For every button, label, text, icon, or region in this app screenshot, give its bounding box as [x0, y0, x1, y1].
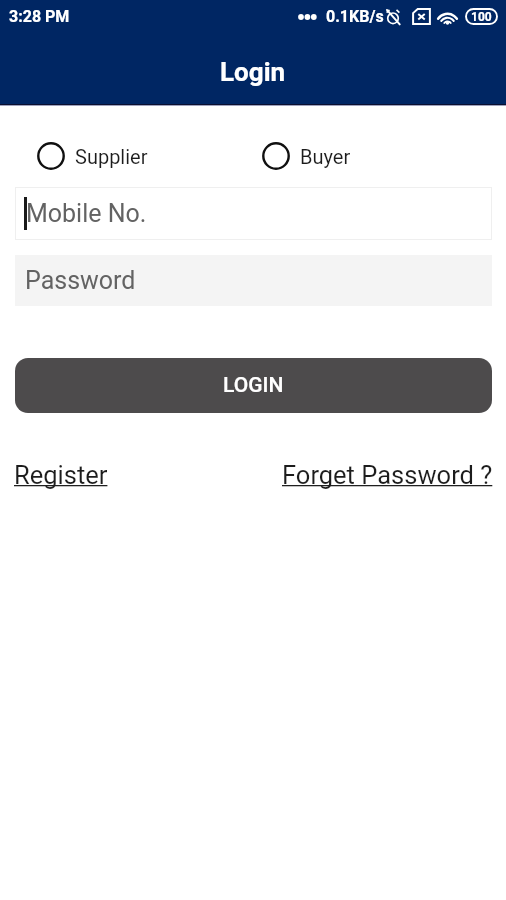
button[interactable]: Select Buyer — [262, 142, 351, 170]
other: Select Supplier — [37, 142, 65, 170]
staticText: Login — [220, 57, 286, 87]
staticText: 3:28 PM — [9, 7, 70, 26]
button[interactable]: LOGIN — [15, 358, 492, 413]
staticText: Buyer — [300, 145, 351, 168]
staticText: LOGIN — [223, 373, 284, 398]
other: Battery 100 percent — [465, 8, 498, 25]
button[interactable]: Register — [14, 460, 108, 490]
staticText: Supplier — [75, 145, 148, 168]
button[interactable]: Mobile No. — [15, 187, 492, 240]
button[interactable]: Password — [15, 255, 492, 306]
staticText: 0.1KB/s — [326, 7, 384, 26]
other: Alarm off — [385, 9, 401, 25]
staticText: 100 — [471, 10, 492, 24]
other: Wi-Fi connected — [436, 9, 459, 25]
button[interactable]: Select Supplier — [37, 142, 148, 170]
other: No SIM card — [412, 8, 431, 25]
staticText: Password — [25, 266, 136, 295]
button[interactable]: Forget Password ? — [282, 460, 493, 490]
other: Select Buyer — [262, 142, 290, 170]
staticText: Mobile No. — [26, 199, 147, 228]
